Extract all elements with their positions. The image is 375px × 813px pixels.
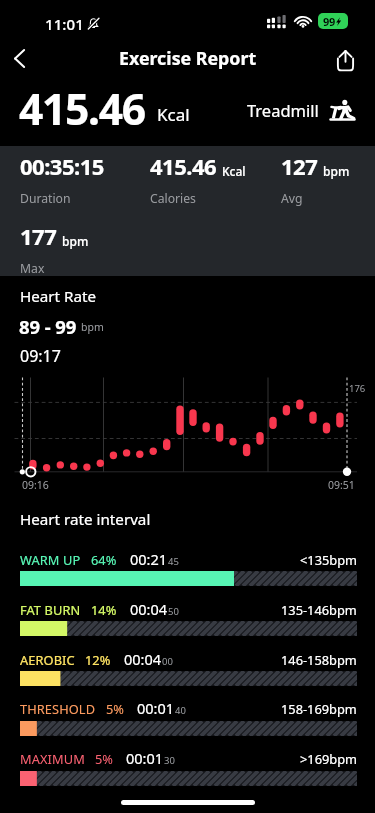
staticText: Treadmill (247, 99, 319, 121)
staticText: 09:17 (20, 345, 61, 367)
staticText: 127 (281, 151, 318, 181)
staticText: 146-158bpm (281, 651, 357, 668)
staticText: 5% (95, 750, 113, 767)
staticText: WARM UP (20, 551, 81, 568)
staticText: Avg (281, 190, 303, 207)
staticText: <135bpm (300, 551, 357, 568)
staticText: bpm (81, 320, 104, 334)
staticText: 09:51 (328, 478, 355, 492)
staticText: FAT BURN (20, 601, 81, 618)
staticText: 00:04 (124, 649, 162, 669)
staticText: 09:16 (22, 478, 49, 492)
staticText: 14% (91, 601, 117, 618)
staticText: 40 (175, 704, 186, 717)
staticText: 50 (168, 605, 179, 618)
staticText: 12% (85, 651, 111, 668)
staticText: 00:01 (137, 698, 175, 718)
staticText: 158-169bpm (281, 700, 357, 717)
staticText: 99 (323, 14, 335, 29)
staticText: 00:35:15 (20, 151, 104, 181)
staticText: bpm (62, 233, 89, 249)
staticText: Max (20, 260, 45, 277)
staticText: 30 (164, 754, 175, 767)
staticText: Kcal (222, 163, 246, 179)
staticText: 64% (91, 551, 117, 568)
staticText: 00 (162, 655, 173, 668)
staticText: Exercise Report (119, 46, 257, 70)
staticText: Heart Rate (20, 286, 97, 307)
staticText: Kcal (157, 103, 190, 126)
staticText: 11:01 (45, 14, 84, 34)
staticText: AEROBIC (20, 651, 75, 668)
staticText: 5% (106, 700, 124, 717)
staticText: Duration (20, 190, 71, 207)
staticText: 00:01 (126, 748, 164, 768)
button[interactable]: Share (324, 39, 366, 81)
staticText: MAXIMUM (20, 750, 85, 767)
staticText: 00:21 (130, 549, 168, 569)
staticText: 176 (349, 382, 366, 395)
staticText: 45 (168, 555, 179, 568)
staticText: 00:04 (130, 599, 168, 619)
staticText: 177 (20, 221, 57, 251)
staticText: THRESHOLD (20, 700, 96, 717)
staticText: Calories (150, 190, 196, 207)
staticText: 415.46 (150, 151, 217, 181)
staticText: 89 - 99 (19, 314, 77, 339)
staticText: 135-146bpm (281, 601, 357, 618)
staticText: 415.46 (19, 80, 145, 138)
staticText: Heart rate interval (20, 509, 151, 530)
button[interactable]: Back (0, 37, 40, 79)
staticText: bpm (323, 163, 350, 179)
staticText: >169bpm (300, 750, 357, 767)
